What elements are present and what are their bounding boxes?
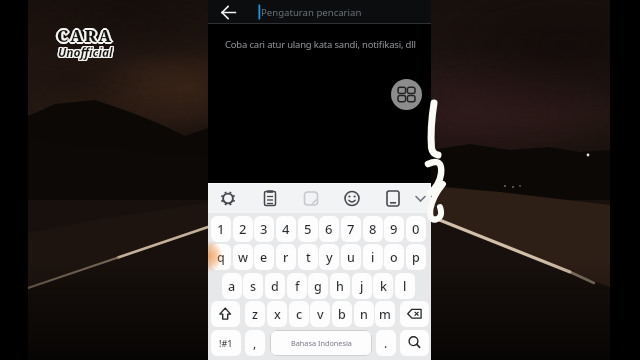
button[interactable]: n [354,301,374,327]
staticText: CARA [57,25,113,47]
staticText: !#1 [219,337,233,349]
button[interactable]: 3 [254,216,274,242]
button[interactable]: z [245,301,265,327]
button[interactable] [362,185,392,212]
staticText: Unofficial [57,44,112,60]
staticText: 5 [304,220,312,238]
button[interactable]: c [289,301,309,327]
button[interactable]: w [233,244,253,270]
staticText: Pengaturan pencarian [261,6,362,19]
button[interactable]: s [243,273,263,299]
staticText: Unofficial [59,44,114,60]
staticText: Unofficial [58,45,113,61]
staticText: e [260,249,268,266]
button[interactable]: u [341,244,361,270]
staticText: b [338,306,346,323]
button[interactable] [391,79,422,110]
button[interactable]: f [287,273,307,299]
staticText: CARA [56,24,112,46]
staticText: CARA [58,26,114,48]
staticText: Unofficial [59,45,114,61]
button[interactable]: 8 [363,216,383,242]
staticText: 0 [412,220,420,238]
staticText: u [347,249,355,266]
staticText: z [252,306,258,323]
button[interactable]: r [276,244,296,270]
staticText: 1 [217,220,225,238]
staticText: 8 [369,220,377,238]
button[interactable]: x [267,301,287,327]
staticText: m [379,306,391,323]
staticText: CARA [57,23,113,45]
button[interactable]: p [406,244,426,270]
staticText: q [217,249,225,266]
button[interactable] [400,301,429,327]
button[interactable] [399,185,429,212]
staticText: 3 [260,220,268,238]
button[interactable]: y [319,244,339,270]
button[interactable]: 0 [406,216,426,242]
staticText: k [380,278,387,295]
staticText: p [412,249,420,266]
button[interactable]: q [211,244,231,270]
staticText: o [390,249,398,266]
button[interactable]: j [352,273,372,299]
staticText: Unofficial [58,43,113,59]
button[interactable]: m [375,301,395,327]
button[interactable] [214,185,244,212]
staticText: a [228,278,236,295]
staticText: 2 [239,220,247,238]
button[interactable]: a [222,273,242,299]
staticText: Unofficial [58,44,113,60]
button[interactable]: 2 [233,216,253,242]
button[interactable] [251,185,281,212]
button[interactable]: b [332,301,352,327]
staticText: Unofficial [57,43,112,59]
button[interactable]: v [310,301,330,327]
button[interactable]: . [376,330,396,356]
staticText: CARA [56,26,112,48]
staticText: h [336,278,344,295]
staticText: 9 [390,220,398,238]
button[interactable]: e [254,244,274,270]
button[interactable] [400,330,429,356]
button[interactable]: !#1 [211,330,241,356]
button[interactable]: i [363,244,383,270]
staticText: g [314,278,322,295]
staticText: d [271,278,279,295]
staticText: CARA [55,25,111,47]
staticText: 4 [282,220,290,238]
staticText: , [253,335,257,351]
button[interactable]: d [265,273,285,299]
button[interactable] [288,185,318,212]
staticText: Unofficial [59,43,114,59]
button[interactable]: l [395,273,415,299]
button[interactable]: 4 [276,216,296,242]
staticText: w [238,249,249,266]
button[interactable]: o [384,244,404,270]
button[interactable]: 9 [384,216,404,242]
button[interactable]: 6 [319,216,339,242]
button[interactable]: , [245,330,265,356]
button[interactable] [211,301,240,327]
button[interactable]: Bahasa Indonesia [270,330,372,356]
staticText: j [360,278,364,295]
button[interactable]: k [373,273,393,299]
staticText: 7 [347,220,355,238]
button[interactable]: 7 [341,216,361,242]
button[interactable] [325,185,355,212]
staticText: Unofficial [57,45,112,61]
button[interactable]: 1 [211,216,231,242]
staticText: Coba cari atur ulang kata sandi, notifik… [225,38,416,51]
staticText: s [250,278,257,295]
button[interactable]: g [308,273,328,299]
button[interactable] [208,0,238,24]
staticText: t [306,249,311,266]
staticText: i [371,249,375,266]
button[interactable]: t [298,244,318,270]
staticText: v [317,306,324,323]
staticText: . [384,335,388,351]
button[interactable]: Pengaturan pencarian [244,0,431,24]
button[interactable]: h [330,273,350,299]
button[interactable]: 5 [298,216,318,242]
